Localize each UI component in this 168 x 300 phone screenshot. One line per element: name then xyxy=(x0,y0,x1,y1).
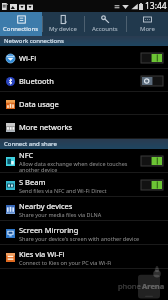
staticText: Bluetooth xyxy=(19,76,54,86)
button[interactable]: Switch on xyxy=(141,180,163,190)
staticText: More networks xyxy=(19,122,73,132)
button[interactable]: Kies via Wi-Fi xyxy=(0,245,168,269)
staticText: Connect to Kies on your PC via Wi-Fi xyxy=(19,259,112,266)
button[interactable]: Screen Mirroring xyxy=(0,221,168,245)
staticText: phone xyxy=(118,281,141,291)
button[interactable]: Connections xyxy=(0,12,42,36)
staticText: Connections xyxy=(3,25,39,33)
staticText: Data usage xyxy=(19,99,59,109)
staticText: Send files via NFC and Wi-Fi Direct xyxy=(19,187,107,194)
button[interactable]: More networks xyxy=(0,115,168,139)
staticText: Share your media files via DLNA xyxy=(19,211,102,218)
staticText: Kies via Wi-Fi xyxy=(19,249,65,259)
button[interactable]: Switch on xyxy=(141,156,163,166)
staticText: Arena xyxy=(142,281,165,291)
staticText: S Beam xyxy=(19,177,46,187)
staticText: Share your device's screen with another … xyxy=(19,235,140,242)
staticText: Screen Mirroring xyxy=(19,225,79,235)
staticText: Nearby devices xyxy=(19,201,73,211)
button[interactable]: Bluetooth xyxy=(0,69,168,92)
button[interactable]: Accounts xyxy=(84,12,126,36)
staticText: My device xyxy=(49,25,77,33)
button[interactable]: NFC xyxy=(0,149,168,173)
button[interactable]: Nearby devices xyxy=(0,197,168,221)
button[interactable]: Switch off xyxy=(141,76,163,86)
staticText: NFC xyxy=(19,150,34,160)
staticText: Accounts xyxy=(92,25,118,33)
staticText: Wi-Fi xyxy=(19,53,37,63)
staticText: Connect and share xyxy=(4,140,57,148)
staticText: Allow data exchange when device touches … xyxy=(19,160,138,173)
button[interactable]: S Beam xyxy=(0,173,168,197)
button[interactable]: My device xyxy=(42,12,84,36)
button[interactable]: More xyxy=(126,12,168,36)
button[interactable]: Wi-Fi xyxy=(0,46,168,69)
staticText: Network connections xyxy=(4,37,64,45)
button[interactable]: Switch on xyxy=(141,53,163,63)
staticText: More xyxy=(140,25,155,33)
staticText: 13:44 xyxy=(145,0,167,12)
button[interactable]: Data usage xyxy=(0,92,168,115)
